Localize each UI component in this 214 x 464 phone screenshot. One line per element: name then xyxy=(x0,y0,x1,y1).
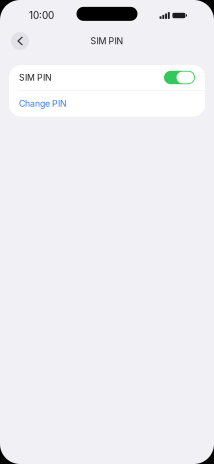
staticText: Change PIN xyxy=(19,98,67,109)
button[interactable]: Back xyxy=(11,32,29,50)
button[interactable]: Change PIN xyxy=(9,91,205,117)
staticText: SIM PIN xyxy=(19,72,52,83)
staticText: SIM PIN xyxy=(90,36,123,46)
button[interactable]: SIM PIN, on xyxy=(164,71,195,84)
staticText: 10:00 xyxy=(29,9,54,21)
